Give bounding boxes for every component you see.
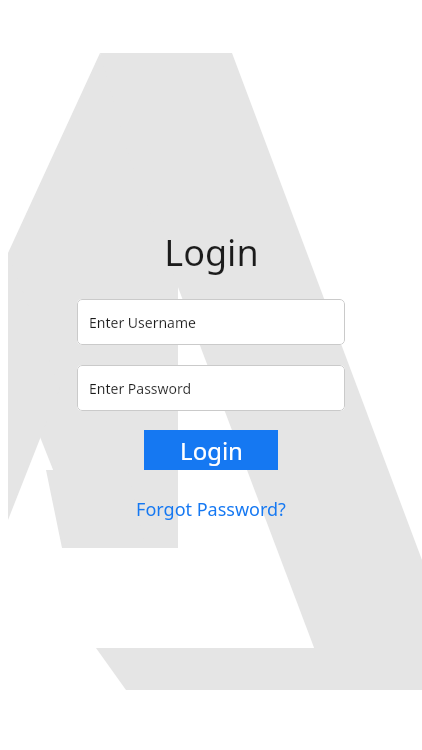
- button[interactable]: Forgot Password?: [130, 495, 292, 524]
- staticText: Enter Username: [89, 313, 196, 332]
- staticText: Forgot Password?: [136, 497, 286, 522]
- button[interactable]: Login: [144, 430, 278, 470]
- staticText: Enter Password: [89, 379, 192, 398]
- button[interactable]: Enter Username: [77, 299, 345, 345]
- button[interactable]: Enter Password: [77, 365, 345, 411]
- staticText: Login: [180, 434, 243, 467]
- staticText: Login: [164, 228, 259, 277]
